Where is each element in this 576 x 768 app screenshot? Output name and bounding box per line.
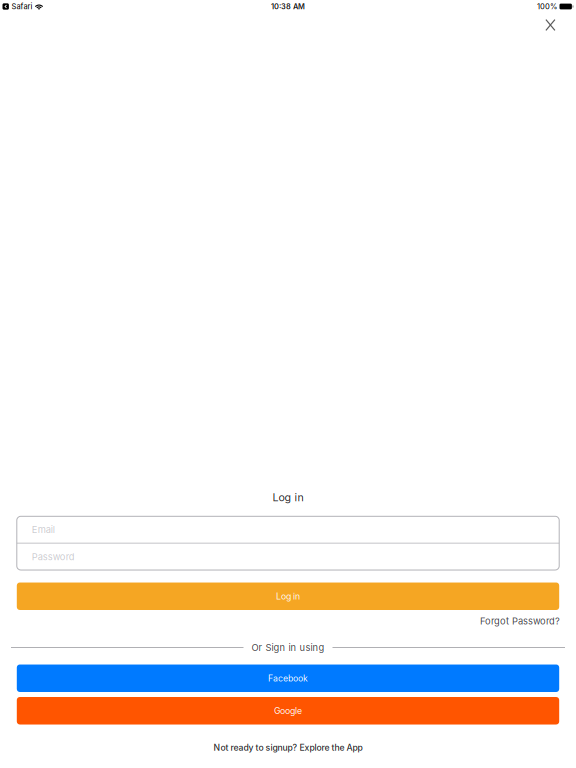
staticText: 100% bbox=[537, 2, 557, 11]
button[interactable]: Email bbox=[17, 516, 559, 543]
button[interactable]: Log in bbox=[17, 582, 559, 610]
staticText: Log in bbox=[276, 591, 300, 601]
button[interactable]: Google bbox=[17, 697, 559, 724]
button[interactable]: Not ready to signup? Explore the App bbox=[213, 741, 362, 754]
staticText: Or Sign in using bbox=[251, 642, 324, 653]
staticText: Password bbox=[32, 551, 75, 562]
staticText: Forgot Password? bbox=[480, 615, 560, 627]
staticText: Email bbox=[32, 524, 55, 535]
button[interactable]: Password bbox=[17, 544, 559, 570]
staticText: Not ready to signup? Explore the App bbox=[213, 742, 362, 753]
button[interactable]: Close bbox=[540, 14, 560, 36]
staticText: 10:38 AM bbox=[271, 2, 305, 11]
staticText: Log in bbox=[272, 491, 303, 504]
button[interactable]: Facebook bbox=[17, 664, 559, 692]
staticText: Google bbox=[274, 705, 302, 716]
staticText: Safari bbox=[11, 2, 32, 11]
staticText: Facebook bbox=[268, 673, 308, 683]
button[interactable]: Forgot Password? bbox=[480, 614, 560, 627]
